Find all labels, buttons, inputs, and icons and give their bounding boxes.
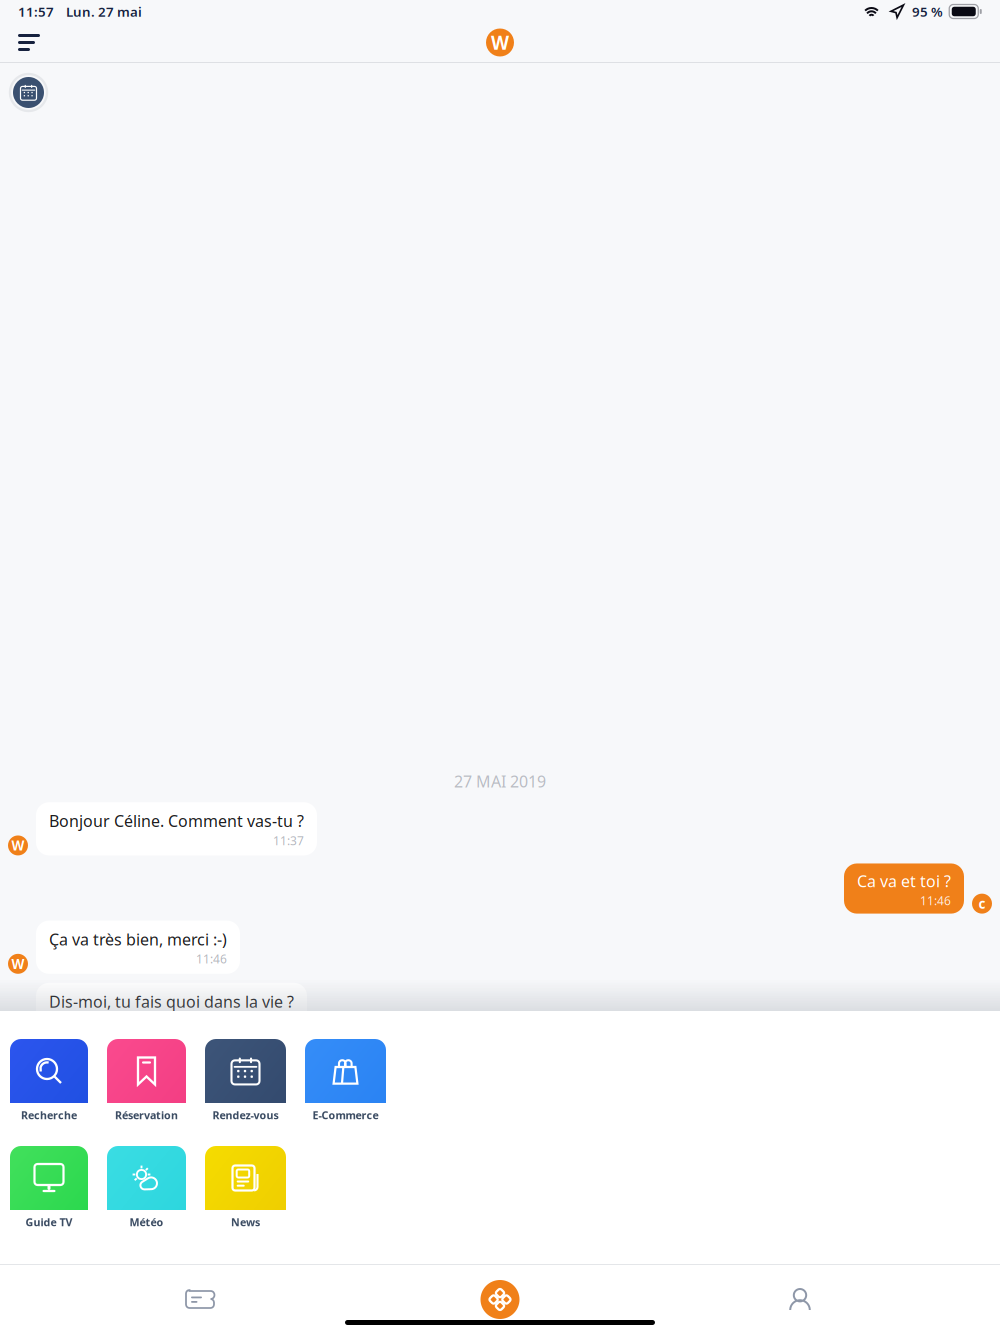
staticText: 11:46: [920, 893, 951, 909]
staticText: c: [978, 895, 985, 912]
staticText: Guide TV: [25, 1215, 72, 1229]
button[interactable]: News: [205, 1146, 286, 1234]
staticText: Bonjour Céline. Comment vas-tu ?: [49, 810, 304, 831]
button[interactable]: Rendez-vous: [205, 1039, 286, 1127]
staticText: 11:37: [273, 832, 304, 848]
staticText: W: [491, 30, 509, 55]
staticText: 11:46: [196, 951, 227, 967]
staticText: Météo: [129, 1215, 163, 1229]
staticText: Recherche: [21, 1108, 77, 1122]
staticText: Lun. 27 mai: [66, 3, 142, 20]
button[interactable]: Guide TV: [10, 1146, 88, 1234]
staticText: News: [231, 1215, 260, 1229]
staticText: Réservation: [115, 1108, 178, 1122]
staticText: 95 %: [912, 3, 943, 20]
staticText: W: [11, 837, 24, 854]
staticText: 11:57: [18, 3, 54, 20]
staticText: Dis-moi, tu fais quoi dans la vie ?: [49, 991, 294, 1012]
staticText: 27 MAI 2019: [454, 771, 546, 792]
button[interactable]: Compte: [486, 28, 514, 56]
button[interactable]: Menu: [0, 24, 54, 61]
staticText: E-Commerce: [312, 1108, 378, 1122]
button[interactable]: E-Commerce: [305, 1039, 386, 1127]
button[interactable]: Recherche: [10, 1039, 88, 1127]
staticText: Ca va et toi ?: [857, 870, 951, 892]
button[interactable]: Météo: [107, 1146, 186, 1234]
button[interactable]: Mes tickets: [130, 1265, 270, 1334]
button[interactable]: Services: [430, 1265, 570, 1334]
staticText: Rendez-vous: [212, 1108, 278, 1122]
staticText: Ça va très bien, merci :-): [49, 929, 227, 950]
button[interactable]: Mon compte: [730, 1265, 870, 1334]
button[interactable]: Réservation: [107, 1039, 186, 1127]
staticText: W: [11, 955, 24, 973]
button[interactable]: Rendez-vous: [0, 63, 53, 117]
